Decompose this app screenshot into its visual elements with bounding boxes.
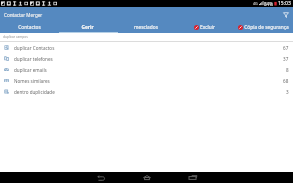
button[interactable]: duplicar emails — [0, 64, 293, 75]
staticText: Contactar Merger — [4, 12, 43, 18]
staticText: mesclados — [134, 24, 158, 31]
staticText: 84% — [264, 1, 273, 7]
button[interactable]: Gerir — [58, 22, 116, 33]
staticText: duplicar telefones — [14, 56, 53, 62]
staticText: 3 — [286, 89, 289, 95]
button[interactable]: duplicar telefones — [0, 53, 293, 64]
staticText: duplicar emails — [14, 67, 47, 73]
button[interactable]: Recent apps — [182, 172, 203, 183]
staticText: Nomes similares — [14, 78, 50, 84]
button[interactable]: Contactos — [0, 22, 58, 33]
staticText: 37 — [283, 56, 289, 62]
button[interactable]: mesclados — [116, 22, 175, 33]
button[interactable]: Excluir — [175, 22, 234, 33]
button[interactable]: Home — [136, 172, 157, 183]
staticText: 4G — [253, 1, 258, 6]
button[interactable]: Nomes similares — [0, 75, 293, 86]
staticText: 68 — [283, 78, 289, 84]
button[interactable]: duplicar Contactos — [0, 42, 293, 53]
button[interactable]: Cópia de segurança — [234, 22, 293, 33]
staticText: duplicar campos — [3, 35, 28, 39]
button[interactable]: Back — [90, 172, 111, 183]
staticText: 15:03 — [278, 0, 291, 7]
staticText: 8 — [286, 67, 289, 73]
button[interactable]: dentro duplicidade — [0, 86, 293, 97]
staticText: duplicar Contactos — [14, 45, 55, 51]
staticText: Excluir — [200, 24, 215, 31]
staticText: Contactos — [18, 24, 41, 31]
button[interactable]: Filter — [278, 7, 293, 22]
staticText: Cópia de segurança — [244, 24, 289, 31]
staticText: dentro duplicidade — [14, 89, 55, 95]
staticText: 67 — [283, 45, 289, 51]
staticText: Gerir — [81, 24, 94, 31]
